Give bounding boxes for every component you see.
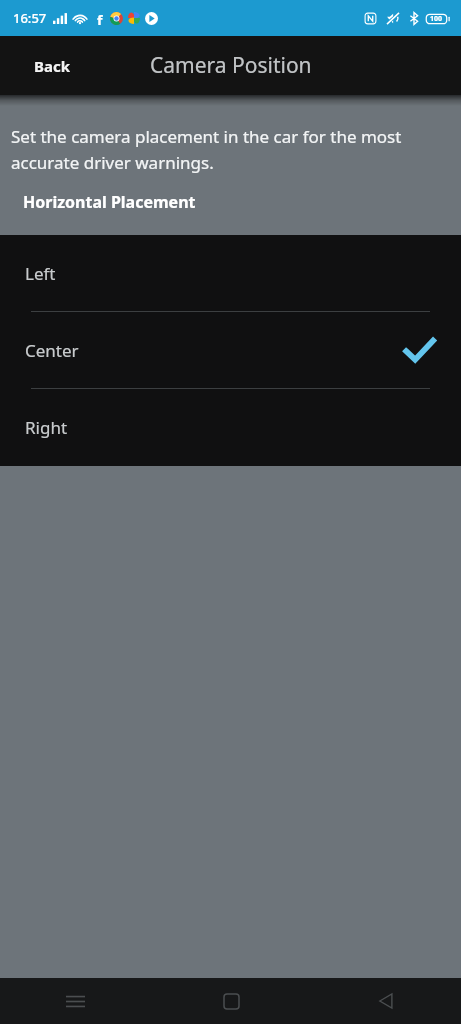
staticText: Right	[25, 416, 68, 439]
staticText: Back	[34, 56, 71, 76]
button[interactable]: Recent apps	[52, 978, 98, 1024]
staticText: Left	[25, 262, 56, 285]
button[interactable]: Back	[0, 36, 104, 95]
staticText: f	[97, 11, 103, 25]
staticText: Camera Position	[150, 51, 312, 80]
staticText: Set the camera placement in the car for …	[11, 125, 450, 174]
button[interactable]: Right	[0, 389, 461, 465]
other: Selected	[405, 339, 434, 362]
staticText: Horizontal Placement	[23, 191, 196, 213]
staticText: 16:57	[13, 9, 47, 27]
staticText: Center	[25, 339, 79, 362]
button[interactable]: Left	[0, 235, 461, 311]
staticText: 100	[430, 14, 443, 24]
button[interactable]: Center	[0, 312, 461, 388]
button[interactable]: Back	[363, 978, 409, 1024]
button[interactable]: Home	[208, 978, 254, 1024]
